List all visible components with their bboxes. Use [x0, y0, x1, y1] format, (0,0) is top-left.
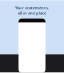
- staticText: Your statements,: [15, 5, 49, 10]
- staticText: all in one place: [18, 10, 46, 16]
